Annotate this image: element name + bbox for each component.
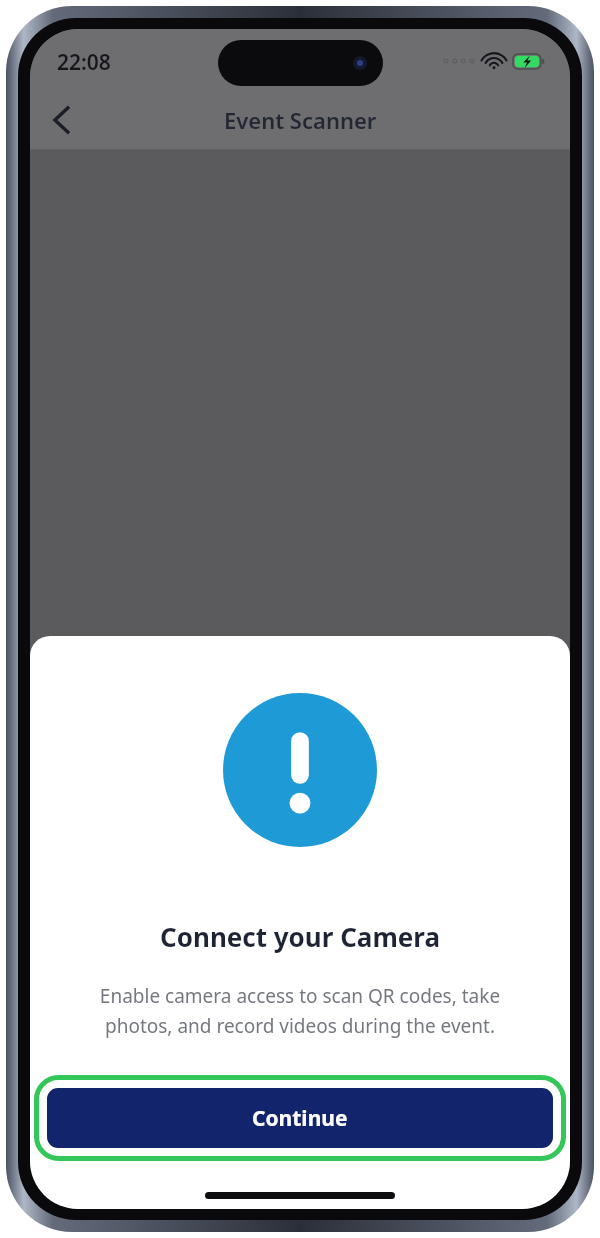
staticText: Event Scanner — [224, 105, 377, 135]
staticText: Continue — [252, 1104, 348, 1133]
button[interactable]: Continue — [47, 1088, 553, 1148]
staticText: Enable camera access to scan QR codes, t… — [70, 983, 530, 1038]
staticText: 22:08 — [57, 48, 111, 77]
button[interactable]: Back — [38, 97, 84, 143]
staticText: Connect your Camera — [160, 919, 440, 954]
